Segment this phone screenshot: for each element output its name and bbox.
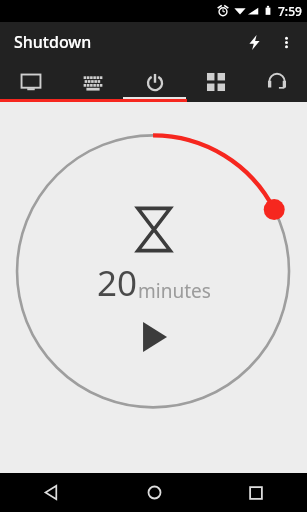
button[interactable]: Apps (185, 62, 246, 102)
button[interactable]: Back (0, 473, 103, 512)
button[interactable]: Shutdown now (238, 26, 270, 58)
button[interactable]: Timer dial, 20 minutes (0, 102, 307, 473)
button[interactable]: Recents (205, 473, 307, 512)
button[interactable]: Keyboard (62, 62, 124, 102)
staticText: 20 (97, 259, 138, 307)
button[interactable]: Audio (246, 62, 307, 102)
button[interactable]: Display (0, 62, 62, 102)
staticText: 7:59 (278, 3, 302, 19)
button[interactable]: More options (270, 26, 302, 58)
button[interactable]: Start (134, 317, 174, 357)
button[interactable]: Power (124, 62, 185, 102)
staticText: Shutdown (14, 31, 92, 53)
button[interactable]: Home (103, 473, 205, 512)
staticText: minutes (138, 278, 211, 304)
